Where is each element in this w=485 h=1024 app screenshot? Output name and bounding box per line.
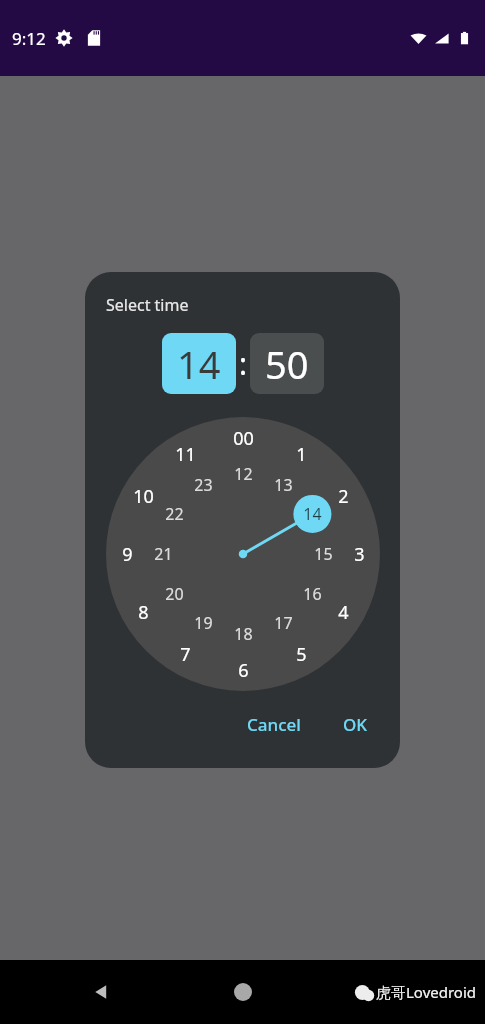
staticText: 4 xyxy=(338,600,349,625)
button[interactable]: Cancel xyxy=(235,705,313,744)
staticText: Select time xyxy=(106,294,189,316)
other: SD card xyxy=(85,29,103,47)
button[interactable]: 00 xyxy=(106,417,380,691)
staticText: 18 xyxy=(234,623,253,645)
button[interactable]: 50 xyxy=(250,333,324,394)
staticText: 21 xyxy=(154,543,173,565)
other: Settings xyxy=(55,29,73,47)
staticText: 8 xyxy=(138,600,149,625)
staticText: 15 xyxy=(314,543,333,565)
staticText: 虎哥Lovedroid xyxy=(376,982,477,1002)
staticText: 14 xyxy=(303,503,322,525)
staticText: 19 xyxy=(194,612,213,634)
staticText: : xyxy=(239,343,248,384)
staticText: OK xyxy=(343,713,368,736)
button[interactable]: 14 xyxy=(162,333,236,394)
staticText: 7 xyxy=(180,642,191,667)
staticText: 50 xyxy=(265,338,309,390)
staticText: 00 xyxy=(233,426,254,451)
staticText: 2 xyxy=(338,484,349,509)
staticText: 14 xyxy=(177,338,221,390)
staticText: 9:12 xyxy=(12,27,46,50)
button[interactable]: Back xyxy=(88,979,114,1005)
staticText: 16 xyxy=(303,583,322,605)
staticText: 20 xyxy=(165,583,184,605)
staticText: 3 xyxy=(354,542,365,567)
staticText: 1 xyxy=(296,442,307,467)
staticText: 6 xyxy=(238,658,249,683)
staticText: 11 xyxy=(175,442,196,467)
staticText: 13 xyxy=(274,474,293,496)
button[interactable]: OK xyxy=(331,705,380,744)
staticText: 5 xyxy=(296,642,307,667)
button[interactable]: Home xyxy=(234,983,252,1001)
staticText: 12 xyxy=(234,463,253,485)
staticText: 22 xyxy=(165,503,184,525)
staticText: Cancel xyxy=(247,713,301,736)
staticText: 10 xyxy=(133,484,154,509)
staticText: 23 xyxy=(194,474,213,496)
staticText: 17 xyxy=(274,612,293,634)
staticText: 9 xyxy=(122,542,133,567)
